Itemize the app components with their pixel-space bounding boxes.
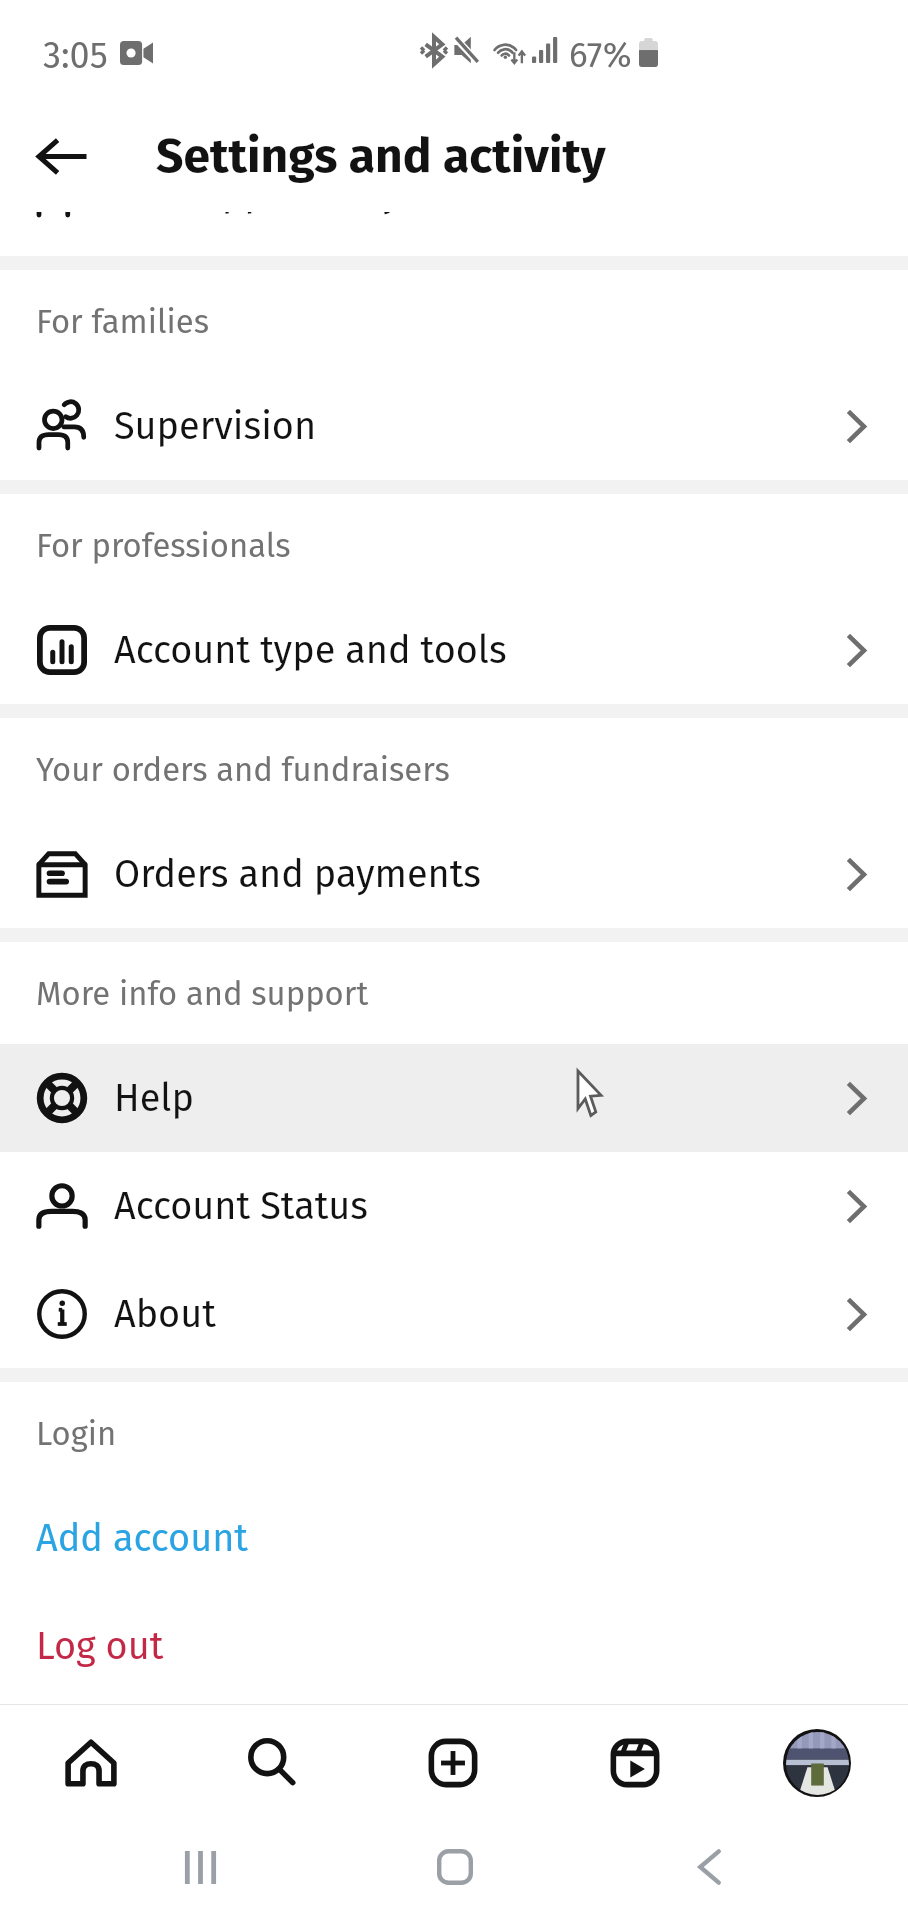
staticText: Account type and tools [114, 628, 507, 673]
button[interactable]: Home [425, 1837, 485, 1897]
button[interactable]: Add account [0, 1484, 908, 1592]
staticText: Add account [36, 1516, 248, 1561]
staticText: 3:05 [43, 34, 108, 77]
staticText: 67% [569, 34, 632, 76]
button[interactable]: Help [0, 1044, 908, 1152]
staticText: Account Status [114, 1184, 368, 1229]
staticText: Help [114, 1076, 194, 1121]
button[interactable]: Reels [544, 1705, 726, 1820]
staticText: Settings and activity [156, 127, 606, 185]
button[interactable]: Account Status [0, 1152, 908, 1260]
staticText: About [114, 1292, 216, 1337]
button[interactable]: Log out [0, 1592, 908, 1700]
staticText: For professionals [36, 526, 291, 565]
button[interactable]: Home [0, 1705, 181, 1820]
staticText: Supervision [114, 404, 317, 449]
button[interactable]: Account type and tools [0, 596, 908, 704]
staticText: Your orders and fundraisers [36, 750, 450, 789]
staticText: Orders and payments [114, 852, 481, 897]
button[interactable]: Orders and payments [0, 820, 908, 928]
staticText: For families [36, 302, 209, 341]
button[interactable]: Search [181, 1705, 362, 1820]
staticText: Your app activity [114, 212, 401, 216]
staticText: Log out [36, 1624, 164, 1669]
button[interactable]: Supervision [0, 372, 908, 480]
button[interactable]: About [0, 1260, 908, 1368]
staticText: More info and support [36, 974, 369, 1013]
button[interactable]: Create [362, 1705, 544, 1820]
button[interactable]: Back [679, 1837, 739, 1897]
button[interactable]: Back [18, 112, 106, 200]
button[interactable]: Profile [726, 1705, 908, 1820]
button[interactable]: Recent apps [170, 1841, 230, 1893]
staticText: Login [36, 1414, 117, 1453]
